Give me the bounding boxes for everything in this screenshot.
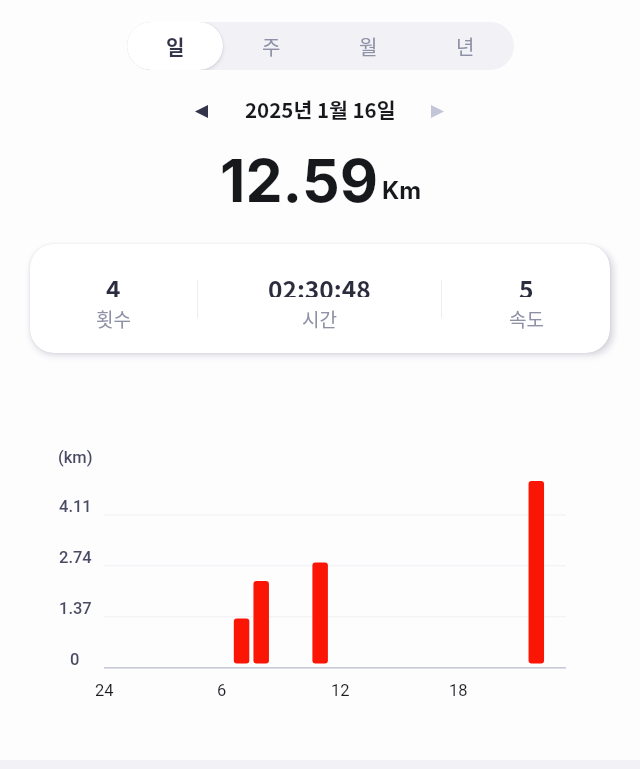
- button[interactable]: 년: [417, 22, 514, 70]
- staticText: 주: [262, 32, 281, 61]
- staticText: 2025년 1월 16일: [245, 94, 396, 124]
- staticText: Km: [382, 176, 422, 205]
- staticText: (km): [58, 448, 93, 467]
- button[interactable]: 4: [30, 244, 197, 353]
- staticText: 4: [106, 271, 121, 297]
- staticText: 02:30:48: [268, 271, 371, 297]
- staticText: 횟수: [96, 305, 131, 329]
- staticText: 일: [166, 32, 185, 61]
- button[interactable]: 5: [442, 244, 610, 353]
- button[interactable]: 일: [127, 22, 223, 70]
- staticText: 12: [331, 681, 350, 700]
- staticText: 속도: [509, 305, 544, 329]
- staticText: 18: [449, 681, 468, 700]
- button[interactable]: 주: [223, 22, 320, 70]
- staticText: 12.59: [220, 145, 378, 216]
- staticText: 5: [519, 271, 534, 297]
- staticText: 4.11: [59, 497, 92, 516]
- staticText: 2.74: [59, 548, 92, 567]
- staticText: 월: [359, 32, 378, 61]
- staticText: 0: [70, 650, 80, 669]
- button[interactable]: Previous day: [183, 93, 219, 129]
- button[interactable]: 월: [320, 22, 417, 70]
- staticText: 년: [456, 32, 475, 61]
- staticText: 6: [217, 681, 227, 700]
- button[interactable]: 02:30:48: [198, 244, 441, 353]
- staticText: 24: [95, 681, 114, 700]
- button[interactable]: Next day: [419, 93, 455, 129]
- staticText: 시간: [302, 305, 337, 329]
- staticText: 1.37: [59, 599, 92, 618]
